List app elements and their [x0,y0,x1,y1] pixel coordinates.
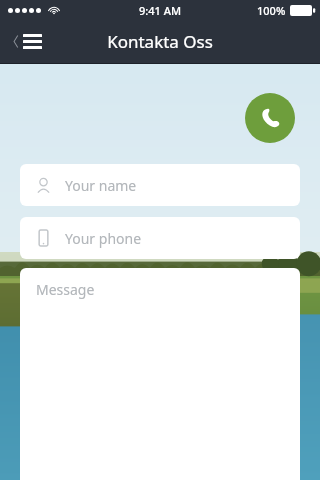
staticText: Your name [65,176,137,195]
button[interactable]: Your phone [20,217,300,259]
button[interactable]: Message [20,268,300,480]
staticText: 9:41 AM [139,3,182,18]
staticText: Kontakta Oss [107,30,213,53]
staticText: 100% [257,3,286,18]
button[interactable]: Your name [20,164,300,206]
button[interactable]: Menu [10,28,44,55]
button[interactable]: Call [245,93,295,143]
staticText: Message [36,280,95,299]
staticText: Your phone [65,229,142,248]
